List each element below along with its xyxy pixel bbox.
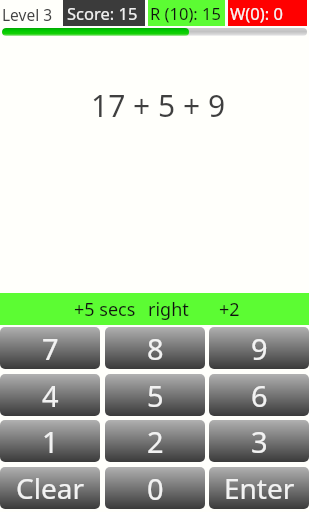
staticText: 7 bbox=[42, 329, 59, 368]
staticText: Clear bbox=[16, 469, 84, 507]
button[interactable]: 8 bbox=[105, 327, 205, 369]
staticText: +2 bbox=[219, 297, 240, 322]
staticText: 2 bbox=[147, 422, 164, 461]
button[interactable]: W(0): 0 bbox=[228, 0, 307, 26]
button[interactable]: Score: 15 bbox=[63, 0, 145, 26]
button[interactable]: 4 bbox=[0, 374, 100, 416]
staticText: 9 bbox=[251, 329, 268, 368]
staticText: 5 bbox=[147, 376, 164, 415]
button[interactable]: Clear bbox=[0, 467, 100, 509]
button[interactable]: 1 bbox=[0, 420, 100, 462]
staticText: 17 + 5 + 9 bbox=[91, 85, 226, 123]
button[interactable]: Enter bbox=[209, 467, 309, 509]
staticText: W(0): 0 bbox=[230, 2, 283, 24]
staticText: Level 3 bbox=[2, 4, 53, 25]
staticText: 4 bbox=[42, 376, 59, 415]
staticText: R (10): 15 bbox=[150, 2, 221, 24]
staticText: 6 bbox=[251, 376, 268, 415]
button[interactable]: 2 bbox=[105, 420, 205, 462]
staticText: Score: 15 bbox=[67, 2, 138, 24]
staticText: 1 bbox=[42, 422, 59, 461]
staticText: 0 bbox=[147, 469, 164, 508]
button[interactable]: R (10): 15 bbox=[148, 0, 225, 26]
button[interactable]: 9 bbox=[209, 327, 309, 369]
button[interactable]: 6 bbox=[209, 374, 309, 416]
staticText: +5 secs bbox=[74, 297, 136, 322]
staticText: right bbox=[148, 297, 189, 322]
staticText: 8 bbox=[147, 329, 164, 368]
button[interactable]: 5 bbox=[105, 374, 205, 416]
staticText: Enter bbox=[224, 469, 295, 507]
staticText: 3 bbox=[251, 422, 268, 461]
button[interactable]: 3 bbox=[209, 420, 309, 462]
button[interactable]: 7 bbox=[0, 327, 100, 369]
button[interactable]: 0 bbox=[105, 467, 205, 509]
